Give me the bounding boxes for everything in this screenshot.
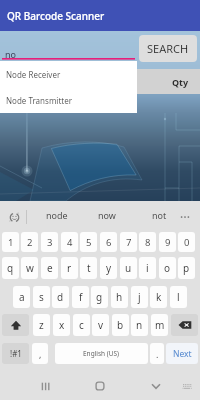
button[interactable]: 3 — [41, 232, 58, 252]
staticText: g — [96, 290, 103, 304]
staticText: s — [39, 290, 44, 304]
button[interactable]: g — [91, 286, 108, 308]
staticText: q — [7, 261, 14, 275]
button[interactable]: i — [139, 257, 156, 279]
staticText: m — [155, 318, 165, 332]
button[interactable]: j — [131, 286, 148, 308]
staticText: node — [46, 209, 68, 221]
staticText: . — [156, 348, 159, 360]
staticText: r — [67, 261, 72, 275]
staticText: no — [5, 48, 17, 60]
button[interactable]: More suggestions — [176, 208, 194, 226]
staticText: f — [79, 290, 83, 304]
staticText: 4 — [67, 236, 73, 249]
staticText: i — [146, 261, 149, 275]
staticText: Node Receiver — [6, 69, 61, 80]
button[interactable]: 5 — [80, 232, 97, 252]
button[interactable]: 7 — [120, 232, 137, 252]
button[interactable]: n — [131, 314, 148, 336]
button[interactable]: !#1 — [2, 343, 29, 364]
staticText: 3 — [47, 236, 53, 249]
staticText: 9 — [165, 236, 171, 249]
staticText: t — [87, 261, 91, 275]
button[interactable]: r — [61, 257, 78, 279]
button[interactable]: SEARCH — [139, 35, 197, 62]
staticText: u — [125, 261, 132, 275]
button[interactable]: 9 — [159, 232, 176, 252]
button[interactable]: key — [171, 314, 198, 336]
staticText: English (US) — [83, 349, 120, 358]
button[interactable]: m — [151, 314, 168, 336]
staticText: QR Barcode Scanner — [7, 9, 105, 23]
button[interactable]: now — [90, 205, 124, 225]
button[interactable]: u — [120, 257, 137, 279]
button[interactable]: 1 — [2, 232, 19, 252]
staticText: y — [106, 261, 112, 275]
button[interactable]: . — [150, 343, 164, 364]
staticText: z — [39, 318, 44, 332]
button[interactable]: c — [73, 314, 90, 336]
button[interactable]: not — [142, 205, 176, 225]
button[interactable]: 6 — [100, 232, 117, 252]
button[interactable]: x — [53, 314, 70, 336]
button[interactable]: l — [170, 286, 187, 308]
button[interactable]: a — [13, 286, 30, 308]
staticText: not — [152, 209, 167, 221]
staticText: Node Transmitter — [6, 95, 73, 106]
staticText: o — [164, 261, 171, 275]
staticText: n — [136, 318, 143, 332]
button[interactable]: 0 — [178, 232, 195, 252]
button[interactable]: 8 — [139, 232, 156, 252]
button[interactable]: Back — [146, 376, 166, 396]
staticText: e — [47, 261, 53, 275]
button[interactable]: h — [111, 286, 128, 308]
staticText: j — [138, 290, 141, 304]
button[interactable]: e — [41, 257, 58, 279]
staticText: Qty — [172, 76, 189, 88]
staticText: l — [177, 290, 180, 304]
button[interactable]: Next — [166, 343, 198, 364]
staticText: , — [39, 348, 42, 360]
staticText: a — [19, 290, 25, 304]
staticText: Next — [173, 348, 192, 360]
button[interactable]: k — [150, 286, 167, 308]
button[interactable]: 4 — [61, 232, 78, 252]
staticText: 7 — [126, 236, 132, 249]
button[interactable]: s — [33, 286, 50, 308]
button[interactable]: Recents — [35, 376, 55, 396]
button[interactable]: w — [21, 257, 38, 279]
button[interactable]: 2 — [21, 232, 38, 252]
button[interactable]: p — [178, 257, 195, 279]
button[interactable]: o — [159, 257, 176, 279]
button[interactable]: Emoji — [6, 209, 23, 226]
button[interactable]: , — [32, 343, 48, 364]
button[interactable]: Change keyboard — [178, 377, 196, 395]
button[interactable]: Home — [90, 376, 110, 396]
staticText: 8 — [145, 236, 151, 249]
button[interactable]: d — [52, 286, 69, 308]
button[interactable]: node — [40, 205, 74, 225]
button[interactable]: t — [80, 257, 97, 279]
staticText: 0 — [184, 236, 190, 249]
button[interactable]: f — [72, 286, 89, 308]
staticText: 1 — [8, 236, 14, 249]
button[interactable]: Node Transmitter — [0, 87, 137, 113]
staticText: now — [98, 209, 116, 221]
staticText: h — [116, 290, 123, 304]
staticText: !#1 — [10, 348, 22, 359]
staticText: SEARCH — [147, 41, 189, 56]
button[interactable]: key — [2, 314, 29, 336]
staticText: c — [79, 318, 84, 332]
button[interactable]: b — [112, 314, 129, 336]
button[interactable]: English (US) — [55, 343, 148, 364]
staticText: v — [98, 318, 104, 332]
button[interactable]: q — [2, 257, 19, 279]
staticText: p — [183, 261, 190, 275]
button[interactable]: y — [100, 257, 117, 279]
button[interactable]: z — [33, 314, 50, 336]
button[interactable]: Node Receiver — [0, 61, 137, 87]
staticText: b — [117, 318, 124, 332]
staticText: w — [26, 261, 34, 275]
staticText: x — [59, 318, 65, 332]
button[interactable]: v — [92, 314, 109, 336]
